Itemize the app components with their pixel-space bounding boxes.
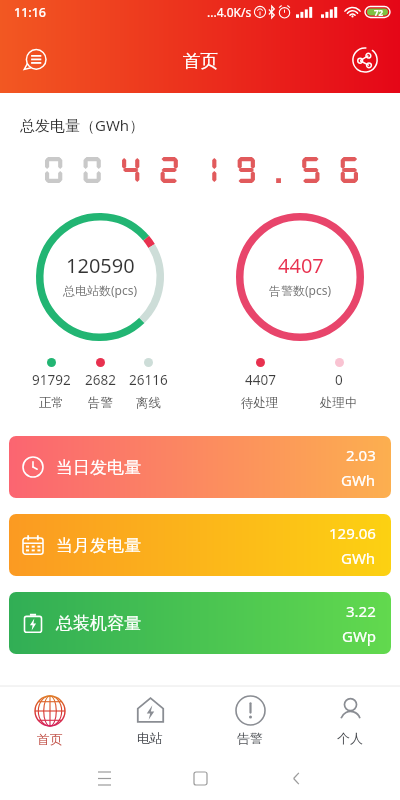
button[interactable]: Share xyxy=(330,26,400,93)
staticText: 4407 xyxy=(278,252,324,279)
button[interactable]: 当月发电量 xyxy=(9,514,391,576)
button[interactable]: 首页 xyxy=(0,686,100,755)
staticText: 总装机容量 xyxy=(56,613,141,634)
button[interactable]: Recents xyxy=(89,763,119,793)
staticText: 告警 xyxy=(237,730,263,746)
staticText: 离线 xyxy=(136,395,161,411)
staticText: 2.03 xyxy=(346,445,376,465)
staticText: 91792 xyxy=(32,371,71,389)
staticText: 120590 xyxy=(66,252,135,279)
button[interactable]: Messages xyxy=(0,26,70,93)
staticText: 首页 xyxy=(183,50,218,72)
button[interactable]: 告警 xyxy=(200,686,300,755)
staticText: 72 xyxy=(374,7,384,18)
staticText: 告警 xyxy=(88,395,113,411)
staticText: 电站 xyxy=(137,730,163,746)
staticText: 当月发电量 xyxy=(56,535,141,556)
staticText: 正常 xyxy=(39,395,64,411)
staticText: 2682 xyxy=(85,371,116,389)
button[interactable]: 总装机容量 xyxy=(9,592,391,654)
staticText: GWh xyxy=(341,548,376,568)
button[interactable]: 当日发电量 xyxy=(9,436,391,498)
staticText: GWp xyxy=(342,626,376,646)
staticText: 总电站数(pcs) xyxy=(63,282,138,298)
staticText: 当日发电量 xyxy=(56,457,141,478)
staticText: 首页 xyxy=(37,731,63,747)
staticText: 26116 xyxy=(129,371,168,389)
staticText: 3.22 xyxy=(346,601,376,621)
staticText: 4407 xyxy=(245,371,276,389)
staticText: 待处理 xyxy=(241,395,279,411)
staticText: 总发电量（GWh） xyxy=(20,115,145,135)
staticText: 处理中 xyxy=(320,395,358,411)
staticText: GWh xyxy=(341,470,376,490)
staticText: ...4.0K/s xyxy=(207,4,252,20)
staticText: 告警数(pcs) xyxy=(269,282,332,298)
button[interactable]: 个人 xyxy=(300,686,400,755)
staticText: 11:16 xyxy=(14,4,47,21)
button[interactable]: Home xyxy=(185,763,215,793)
staticText: 个人 xyxy=(337,730,363,746)
staticText: 129.06 xyxy=(329,523,376,543)
button[interactable]: 电站 xyxy=(100,686,200,755)
button[interactable]: Back xyxy=(281,763,311,793)
staticText: 0 xyxy=(335,371,343,389)
